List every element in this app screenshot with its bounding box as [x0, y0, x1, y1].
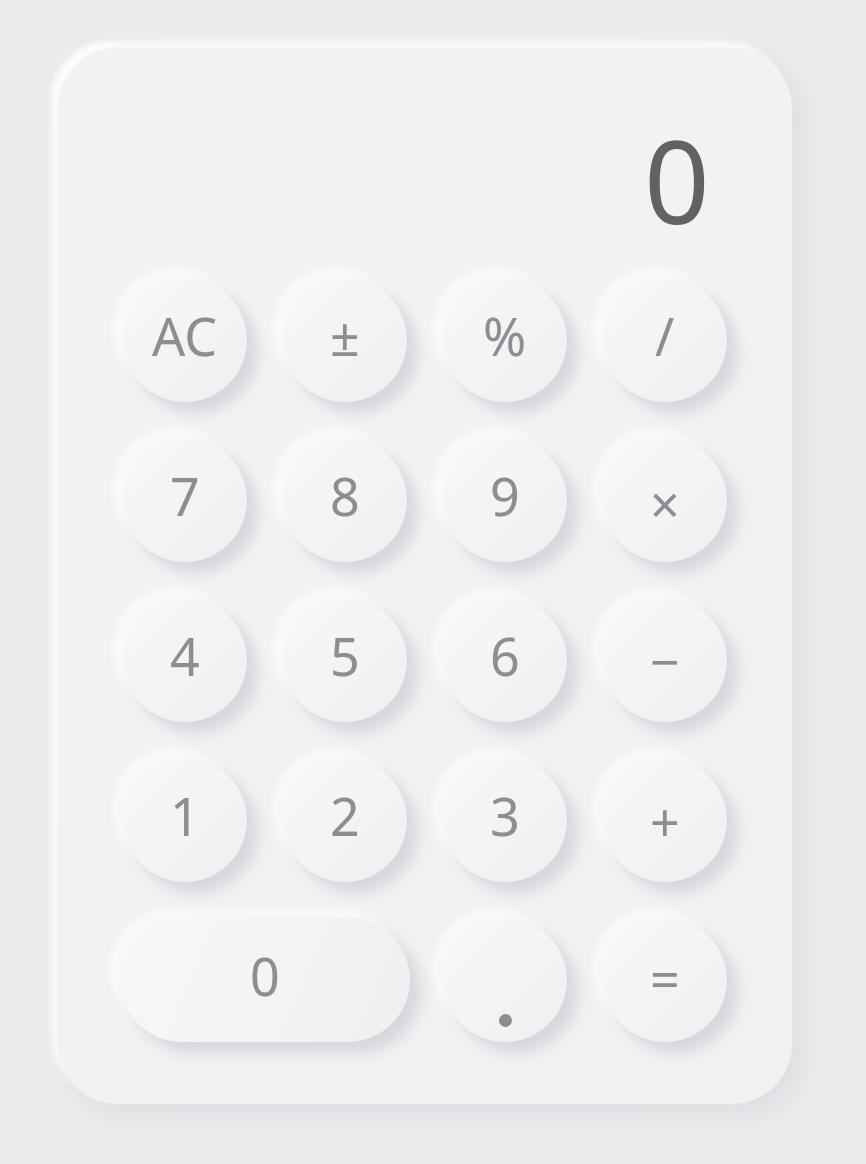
button[interactable]: 1 — [123, 758, 247, 882]
button[interactable]: 3 — [443, 758, 567, 882]
button[interactable]: − — [603, 598, 727, 722]
staticText: 1 — [170, 780, 200, 851]
button[interactable]: 2 — [283, 758, 407, 882]
button[interactable]: 7 — [123, 438, 247, 562]
staticText: 5 — [330, 620, 360, 691]
button[interactable]: 6 — [443, 598, 567, 722]
button[interactable]: 0 — [120, 918, 410, 1042]
staticText: AC — [152, 300, 218, 371]
staticText: / — [655, 300, 675, 371]
staticText: 7 — [170, 460, 200, 531]
staticText: 0 — [644, 101, 710, 246]
staticText: ± — [330, 300, 360, 371]
button[interactable]: 9 — [443, 438, 567, 562]
button[interactable]: % — [443, 278, 567, 402]
button[interactable]: AC — [123, 278, 247, 402]
button[interactable] — [443, 918, 567, 1042]
button[interactable]: 8 — [283, 438, 407, 562]
staticText: 9 — [490, 460, 520, 531]
button[interactable]: 4 — [123, 598, 247, 722]
staticText: % — [483, 300, 527, 371]
staticText: 6 — [490, 620, 520, 691]
button[interactable]: / — [603, 278, 727, 402]
staticText: × — [650, 468, 680, 539]
button[interactable]: + — [603, 758, 727, 882]
staticText: − — [650, 625, 680, 696]
staticText: 3 — [490, 780, 520, 851]
staticText: 4 — [170, 620, 200, 691]
staticText: 2 — [330, 780, 360, 851]
button[interactable]: = — [603, 918, 727, 1042]
button[interactable]: 5 — [283, 598, 407, 722]
button[interactable]: ± — [283, 278, 407, 402]
button[interactable]: × — [603, 438, 727, 562]
staticText: = — [650, 943, 680, 1014]
staticText: + — [650, 786, 680, 857]
staticText: 0 — [250, 940, 280, 1011]
staticText: 8 — [330, 460, 360, 531]
